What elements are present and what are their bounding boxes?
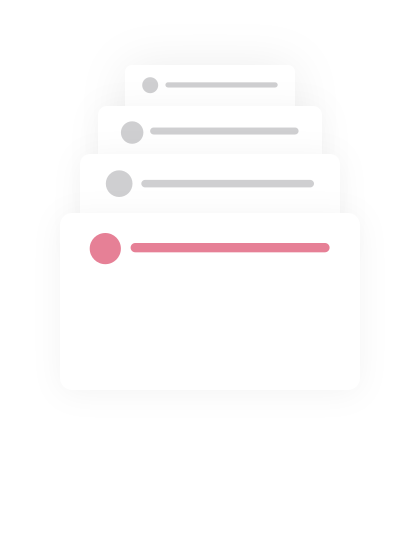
button[interactable]: Card 1, selected [60,213,360,390]
button[interactable]: Card 4 [125,65,295,165]
button[interactable]: Card 3 [98,106,322,216]
button[interactable]: Card 2 [80,154,340,264]
